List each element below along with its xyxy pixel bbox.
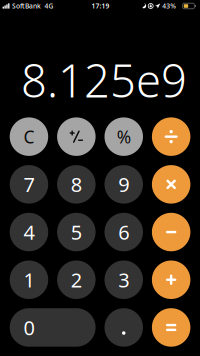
button[interactable]: 8 — [57, 165, 96, 204]
button[interactable]: Toggle sign — [57, 117, 96, 156]
staticText: % — [117, 125, 131, 148]
staticText: 2 — [71, 266, 82, 293]
staticText: 17:19 — [91, 2, 109, 10]
button[interactable]: Equals — [152, 308, 190, 347]
staticText: 8 — [71, 171, 82, 198]
button[interactable]: 3 — [104, 260, 143, 299]
button[interactable]: Divide — [152, 117, 190, 156]
button[interactable]: C — [10, 117, 48, 156]
button[interactable]: Decimal point — [104, 308, 143, 347]
button[interactable]: 6 — [104, 213, 143, 251]
button[interactable]: 7 — [10, 165, 48, 204]
staticText: 4G — [44, 2, 53, 10]
staticText: SoftBank — [12, 2, 41, 10]
staticText: 0 — [23, 314, 34, 341]
button[interactable]: 9 — [104, 165, 143, 204]
staticText: 1 — [23, 266, 34, 293]
staticText: 43% — [162, 2, 176, 10]
staticText: 3 — [118, 266, 129, 293]
button[interactable]: 0 — [10, 308, 96, 347]
button[interactable]: 2 — [57, 260, 96, 299]
staticText: 9 — [118, 171, 129, 198]
staticText: 7 — [23, 171, 34, 198]
staticText: C — [23, 125, 34, 148]
staticText: 6 — [118, 219, 129, 245]
staticText: 5 — [71, 219, 82, 245]
button[interactable]: Subtract — [152, 213, 190, 251]
staticText: 8.125e9 — [21, 50, 187, 110]
button[interactable]: 1 — [10, 260, 48, 299]
button[interactable]: 4 — [10, 213, 48, 251]
staticText: 4 — [23, 219, 34, 245]
button[interactable]: Add — [152, 260, 190, 299]
button[interactable]: Multiply — [152, 165, 190, 204]
button[interactable]: % — [104, 117, 143, 156]
button[interactable]: 5 — [57, 213, 96, 251]
